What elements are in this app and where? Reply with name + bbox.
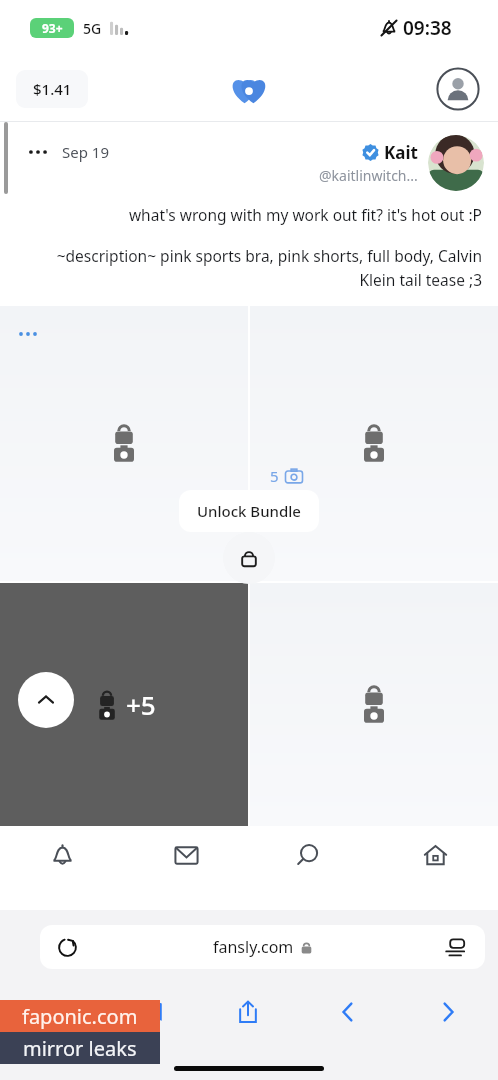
staticText: mirror leaks: [23, 1035, 137, 1062]
staticText: 09:38: [403, 15, 452, 41]
staticText: Kait: [384, 141, 418, 164]
button[interactable]: Media options: [14, 320, 42, 348]
button[interactable]: Locked media: [0, 306, 248, 581]
staticText: +5: [126, 687, 156, 722]
button[interactable]: Unlock bundle: [223, 532, 275, 584]
button[interactable]: Bookmarks: [99, 984, 198, 1040]
staticText: what's wrong with my work out fit? it's …: [128, 204, 482, 225]
staticText: 5G: [83, 19, 102, 38]
button[interactable]: Fansly home: [226, 66, 272, 112]
button[interactable]: Scroll to top: [18, 672, 74, 728]
button[interactable]: Search: [248, 826, 373, 884]
button[interactable]: Share: [198, 984, 298, 1040]
button[interactable]: Home: [373, 826, 498, 884]
button[interactable]: Account: [436, 67, 480, 111]
button[interactable]: $1.41: [16, 70, 88, 108]
button[interactable]: Locked media: [250, 583, 498, 826]
button[interactable]: Notifications: [0, 826, 124, 884]
staticText: ~description~ pink sports bra, pink shor…: [56, 245, 482, 290]
staticText: 5: [270, 466, 279, 486]
button[interactable]: Forward: [398, 984, 498, 1040]
staticText: Sep 19: [62, 142, 109, 162]
staticText: fansly.com: [213, 936, 294, 958]
button[interactable]: Reload: [54, 934, 80, 960]
button[interactable]: Tabs: [0, 984, 99, 1040]
staticText: $1.41: [33, 79, 72, 99]
staticText: @kaitlinwitch...: [319, 166, 418, 185]
button[interactable]: Locked media: [0, 583, 248, 826]
staticText: 93+: [42, 20, 63, 36]
button[interactable]: [428, 135, 484, 191]
button[interactable]: Back: [298, 984, 398, 1040]
button[interactable]: Page settings: [441, 933, 469, 961]
button[interactable]: Reload: [40, 925, 485, 969]
staticText: faponic.com: [22, 1003, 138, 1030]
staticText: Unlock Bundle: [197, 501, 301, 521]
button[interactable]: More options: [22, 136, 54, 168]
button[interactable]: Messages: [124, 826, 248, 884]
button[interactable]: Locked media: [250, 306, 498, 581]
button[interactable]: Unlock Bundle: [179, 490, 319, 532]
